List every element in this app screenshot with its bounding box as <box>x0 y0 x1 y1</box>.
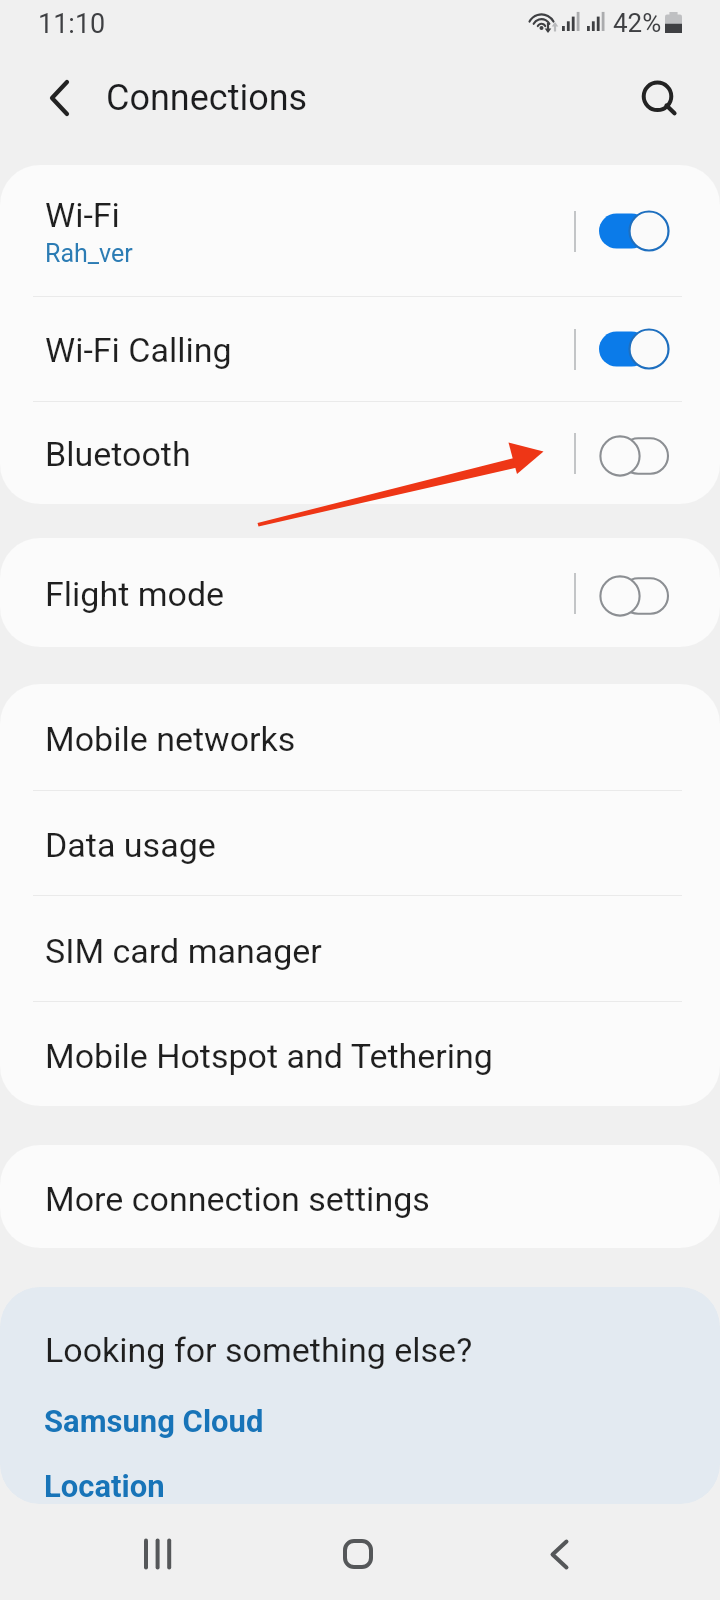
button[interactable]: Mobile Hotspot and Tethering <box>0 1002 720 1106</box>
staticText: Samsung Cloud <box>44 1403 264 1439</box>
staticText: Rah_ver <box>45 239 133 268</box>
staticText: Flight mode <box>45 574 225 614</box>
staticText: Wi-Fi Calling <box>45 330 232 370</box>
button[interactable]: Home <box>318 1514 398 1594</box>
button[interactable]: Bluetooth <box>0 402 720 504</box>
button[interactable]: Wi-Fi <box>0 165 720 296</box>
button[interactable]: Search <box>637 76 689 128</box>
staticText: 11:10 <box>38 8 106 40</box>
staticText: More connection settings <box>45 1179 430 1219</box>
button[interactable]: Samsung Cloud <box>44 1403 264 1439</box>
button[interactable]: Looking for something else? <box>45 1330 473 1370</box>
staticText: Mobile networks <box>45 719 296 759</box>
button[interactable]: Wi-Fi Calling <box>599 328 670 370</box>
button[interactable]: Wi-Fi <box>599 210 670 252</box>
button[interactable]: Mobile networks <box>0 684 720 790</box>
staticText: Looking for something else? <box>45 1330 473 1370</box>
button[interactable]: Flight mode <box>0 538 720 647</box>
button[interactable]: More connection settings <box>0 1145 720 1248</box>
staticText: Mobile Hotspot and Tethering <box>45 1036 493 1076</box>
button[interactable]: Location <box>44 1468 165 1504</box>
staticText: 42% <box>613 8 662 38</box>
staticText: SIM card manager <box>45 931 322 971</box>
staticText: Location <box>44 1468 165 1504</box>
button[interactable]: Back <box>36 75 82 121</box>
staticText: Data usage <box>45 825 216 865</box>
button[interactable]: Data usage <box>0 791 720 895</box>
button[interactable]: Back <box>519 1514 599 1594</box>
button[interactable]: Flight mode <box>599 571 670 615</box>
button[interactable]: Bluetooth <box>599 431 670 475</box>
staticText: Bluetooth <box>45 434 191 474</box>
staticText: Wi-Fi <box>45 195 120 235</box>
staticText: Connections <box>106 77 308 119</box>
button[interactable]: Wi-Fi Calling <box>0 297 720 401</box>
button[interactable]: SIM card manager <box>0 896 720 1001</box>
button[interactable]: Recents <box>118 1514 198 1594</box>
